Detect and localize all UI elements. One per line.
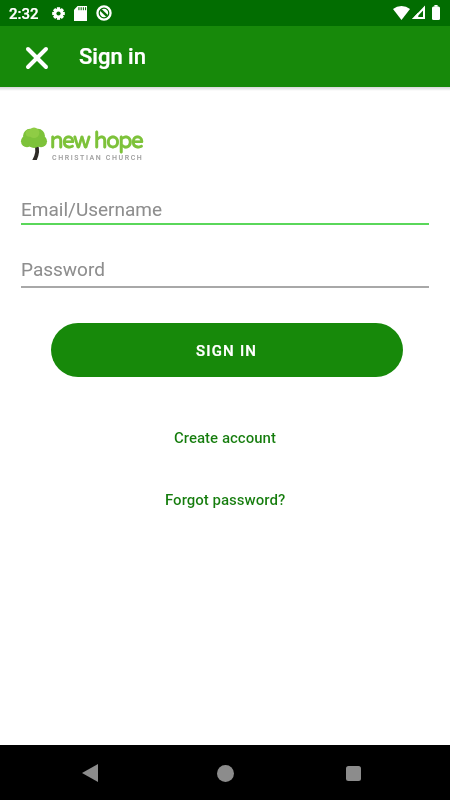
button[interactable] [201,749,249,797]
button[interactable]: Password [21,258,429,287]
button[interactable]: SIGN IN [51,323,403,377]
button[interactable] [16,37,58,79]
button[interactable]: Forgot password? [155,483,296,517]
staticText: Sign in [79,44,146,70]
staticText: CHRISTIAN CHURCH [52,154,144,162]
staticText: Create account [174,429,276,447]
button[interactable] [329,749,377,797]
staticText: SIGN IN [196,342,258,360]
button[interactable]: Email/Username [21,198,429,224]
staticText: new hope [50,128,143,154]
button[interactable] [66,749,114,797]
staticText: Forgot password? [165,491,286,509]
staticText: Password [21,258,105,280]
staticText: 2:32 [9,5,39,23]
staticText: Email/Username [21,198,163,220]
button[interactable]: Create account [164,421,286,455]
